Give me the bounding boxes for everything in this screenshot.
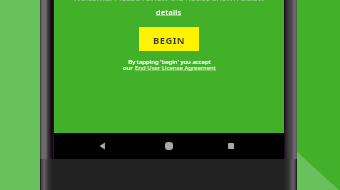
button[interactable]: Recent apps [220, 135, 242, 157]
button[interactable]: End User License Agreement [135, 64, 216, 72]
staticText: End User License Agreement [135, 64, 216, 72]
staticText: Welcome! Please review the notice shown … [73, 0, 265, 4]
staticText: our [123, 64, 135, 72]
button[interactable]: Home [158, 135, 180, 157]
staticText: details [156, 7, 182, 17]
button[interactable]: BEGIN [139, 27, 199, 51]
staticText: By tapping 'begin' you accept [128, 58, 211, 66]
staticText: BEGIN [153, 34, 185, 47]
button[interactable]: Back [92, 135, 114, 157]
button[interactable]: details [156, 7, 182, 17]
